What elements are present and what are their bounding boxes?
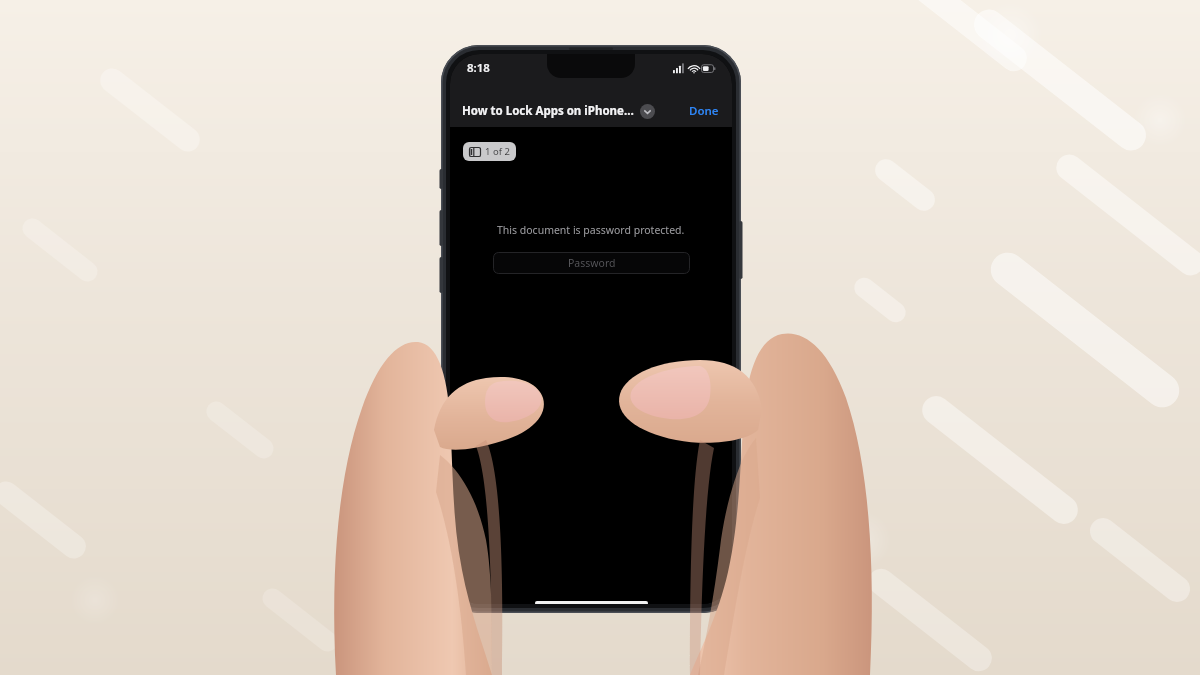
staticText: Done bbox=[689, 103, 719, 119]
button[interactable]: Show document options bbox=[640, 104, 655, 119]
button[interactable]: Done bbox=[687, 101, 721, 121]
button[interactable]: 1 of 2 bbox=[463, 142, 516, 161]
staticText: 1 of 2 bbox=[485, 145, 510, 158]
staticText: 8:18 bbox=[467, 60, 490, 76]
staticText: This document is password protected. bbox=[497, 223, 685, 237]
button[interactable]: Password bbox=[493, 252, 690, 274]
staticText: How to Lock Apps on iPhone… bbox=[462, 103, 634, 119]
staticText: Password bbox=[568, 256, 616, 270]
